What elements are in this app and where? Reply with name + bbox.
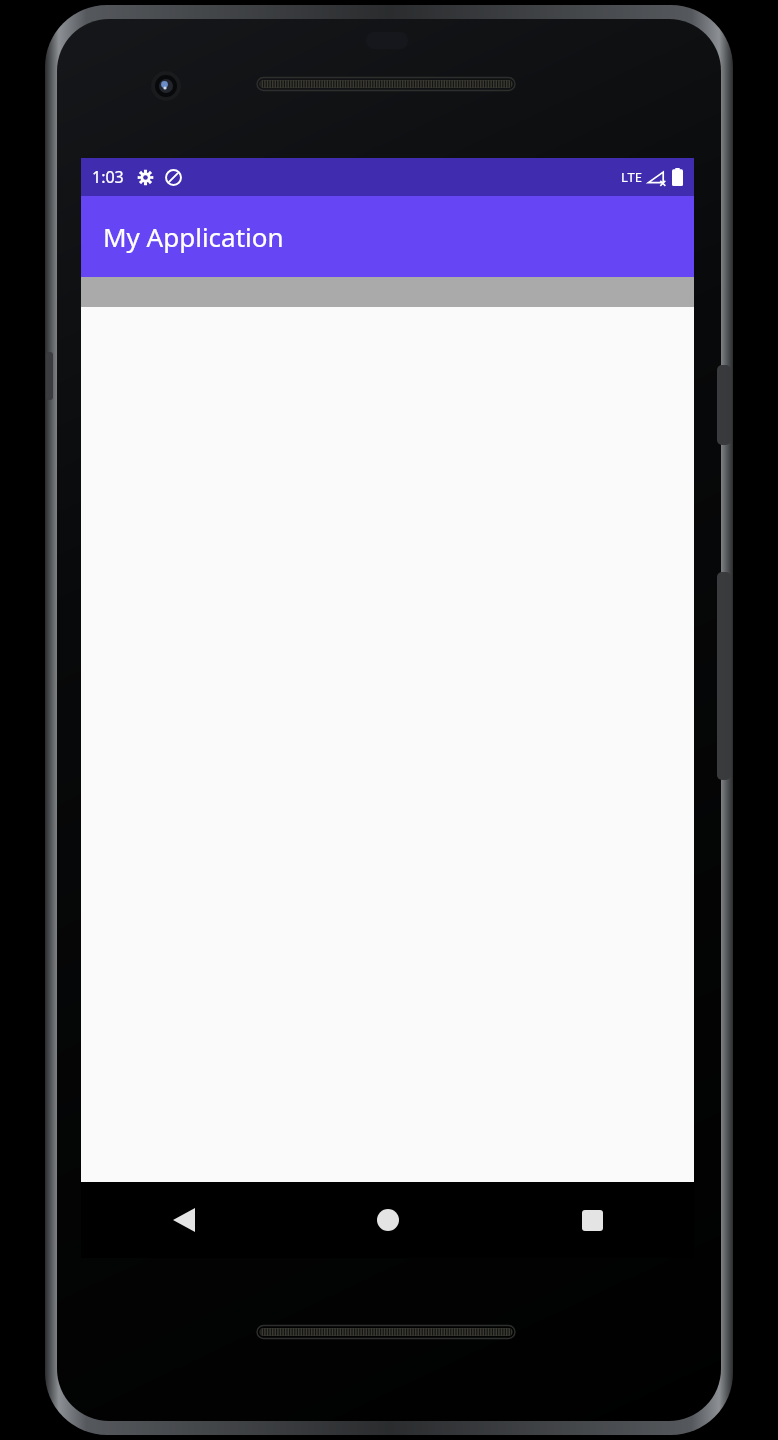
- button[interactable]: Home: [286, 1182, 490, 1258]
- button[interactable]: Back: [81, 1182, 286, 1258]
- button[interactable]: Recent apps: [490, 1182, 694, 1258]
- staticText: LTE: [621, 168, 643, 186]
- staticText: My Application: [103, 219, 284, 254]
- staticText: 1:03: [92, 166, 124, 188]
